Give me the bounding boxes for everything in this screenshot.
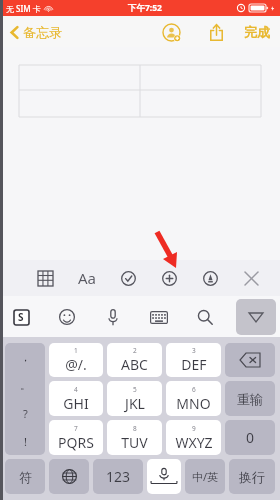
staticText: TUV bbox=[121, 433, 148, 452]
staticText: ! bbox=[24, 434, 27, 449]
button[interactable]: 123 bbox=[93, 459, 143, 494]
button[interactable]: 8 bbox=[107, 420, 162, 455]
button[interactable]: 9 bbox=[166, 420, 221, 455]
staticText: 重输 bbox=[237, 391, 263, 407]
staticText: 备忘录 bbox=[23, 24, 62, 40]
button[interactable]: ? bbox=[5, 399, 45, 427]
button[interactable]: 0 bbox=[225, 420, 275, 455]
staticText: 4 bbox=[74, 385, 78, 394]
staticText: 123 bbox=[106, 467, 131, 486]
button[interactable]: Close keyboard bbox=[236, 263, 266, 293]
staticText: 无 SIM 卡 bbox=[6, 3, 41, 14]
button[interactable]: 5 bbox=[107, 381, 162, 416]
staticText: ABC bbox=[121, 355, 148, 374]
staticText: ? bbox=[23, 406, 28, 421]
button[interactable]: Checklist bbox=[113, 263, 143, 293]
button[interactable]: Keyboard layout bbox=[144, 302, 174, 332]
staticText: 5 bbox=[133, 385, 137, 394]
button[interactable]: ， bbox=[5, 343, 45, 371]
button[interactable]: 。 bbox=[5, 371, 45, 399]
button[interactable]: 备忘录 bbox=[8, 22, 64, 42]
button[interactable]: 4 bbox=[49, 381, 103, 416]
staticText: WXYZ bbox=[175, 433, 213, 452]
staticText: 完成 bbox=[244, 24, 270, 40]
button[interactable]: Switch language bbox=[49, 459, 89, 494]
button[interactable]: 重输 bbox=[225, 381, 275, 416]
staticText: Aa bbox=[78, 268, 97, 288]
staticText: 0 bbox=[246, 428, 255, 447]
button[interactable]: Emoji bbox=[52, 302, 82, 332]
button[interactable]: Voice input bbox=[98, 302, 128, 332]
button[interactable]: 符 bbox=[5, 459, 45, 494]
staticText: @/. bbox=[65, 355, 87, 374]
staticText: MNO bbox=[176, 394, 211, 413]
button[interactable]: Hide keyboard bbox=[236, 299, 276, 335]
staticText: JKL bbox=[125, 394, 145, 413]
staticText: 1 bbox=[74, 346, 78, 355]
staticText: S bbox=[18, 310, 24, 324]
staticText: 2 bbox=[133, 346, 137, 355]
button[interactable]: 换行 bbox=[229, 459, 275, 494]
button[interactable]: 2 bbox=[107, 343, 162, 377]
button[interactable]: Aa bbox=[72, 263, 102, 293]
button[interactable]: 1 bbox=[49, 343, 103, 377]
button[interactable]: Space bbox=[147, 459, 181, 494]
button[interactable]: Add attachment bbox=[154, 263, 184, 293]
button[interactable]: Markup bbox=[195, 263, 225, 293]
staticText: 3 bbox=[192, 346, 196, 355]
button[interactable]: Input method bbox=[6, 302, 36, 332]
staticText: PQRS bbox=[58, 433, 94, 452]
staticText: DEF bbox=[181, 355, 207, 374]
staticText: 7 bbox=[74, 424, 78, 433]
staticText: 8 bbox=[133, 424, 137, 433]
staticText: ， bbox=[20, 350, 31, 364]
button[interactable]: 中/英 bbox=[185, 459, 225, 494]
button[interactable]: Search bbox=[190, 302, 220, 332]
button[interactable]: Add people bbox=[158, 19, 184, 45]
staticText: 符 bbox=[19, 469, 32, 485]
button[interactable]: 6 bbox=[166, 381, 221, 416]
staticText: 9 bbox=[192, 424, 196, 433]
button[interactable]: 3 bbox=[166, 343, 221, 377]
staticText: 下午7:52 bbox=[128, 2, 162, 14]
staticText: 中/英 bbox=[192, 469, 219, 484]
button[interactable]: Table bbox=[30, 263, 60, 293]
button[interactable]: Share bbox=[203, 19, 229, 45]
staticText: GHI bbox=[63, 394, 89, 413]
button[interactable]: 7 bbox=[49, 420, 103, 455]
button[interactable]: Delete bbox=[225, 343, 275, 377]
staticText: 。 bbox=[20, 378, 31, 392]
button[interactable]: ! bbox=[5, 427, 45, 455]
button[interactable]: 完成 bbox=[242, 22, 272, 42]
staticText: 6 bbox=[192, 385, 196, 394]
staticText: 换行 bbox=[239, 469, 265, 485]
